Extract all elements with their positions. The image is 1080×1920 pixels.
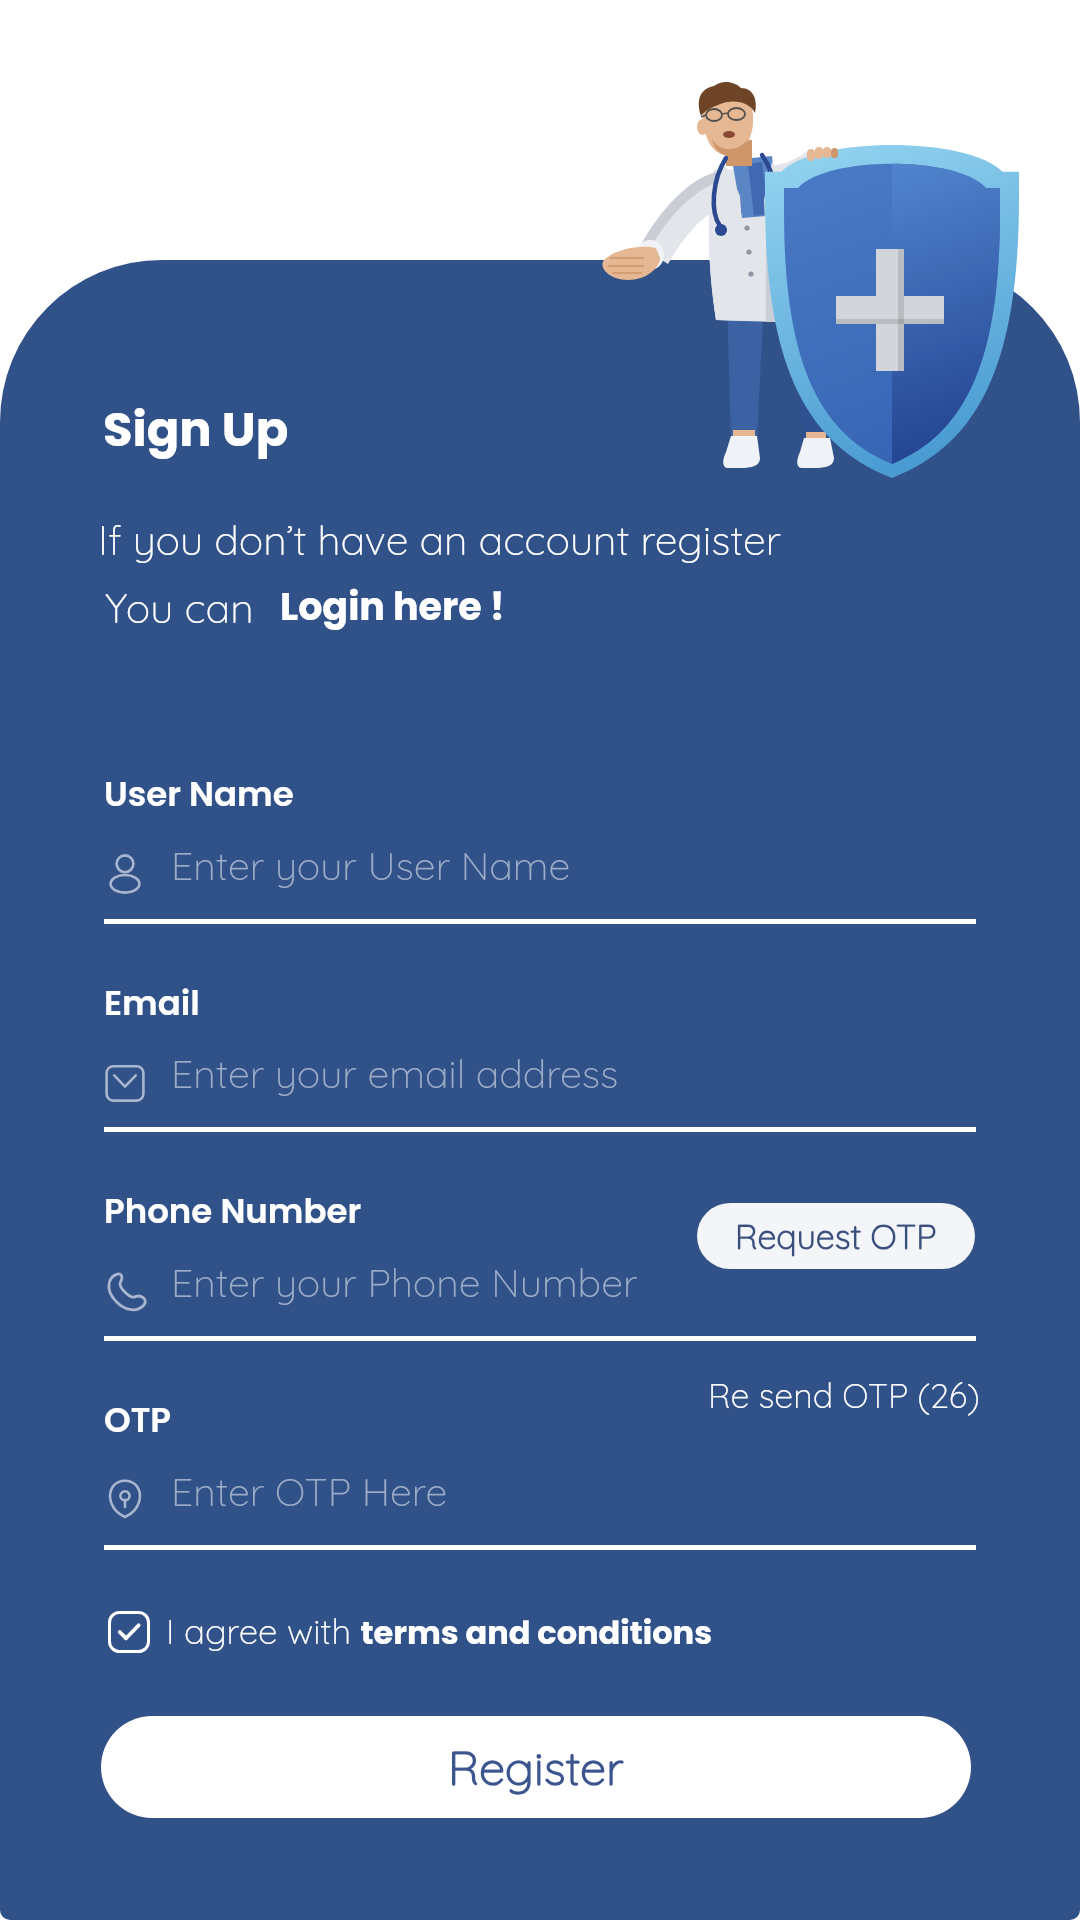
staticText: If you don’t have an account register xyxy=(98,514,781,565)
staticText: Re send OTP (26) xyxy=(708,1374,980,1417)
staticText: Sign Up xyxy=(103,396,289,463)
staticText: Enter your Phone Number xyxy=(171,1258,638,1307)
staticText: Login here ! xyxy=(280,580,505,633)
staticText: You can xyxy=(105,582,254,633)
staticText: OTP xyxy=(104,1396,171,1444)
staticText: Phone Number xyxy=(104,1187,362,1235)
other: User xyxy=(105,853,145,893)
staticText: Email xyxy=(104,979,200,1027)
staticText: Enter your User Name xyxy=(171,841,571,890)
button[interactable]: Request OTP xyxy=(697,1203,975,1269)
button[interactable]: I agree with terms and conditions xyxy=(108,1609,712,1655)
other: Phone xyxy=(105,1270,149,1314)
staticText: Register xyxy=(448,1738,624,1797)
other: OTP xyxy=(105,1479,145,1519)
staticText: User Name xyxy=(104,770,294,818)
button[interactable]: Re send OTP (26) xyxy=(708,1374,980,1417)
staticText: I agree with terms and conditions xyxy=(166,1609,712,1655)
button[interactable]: Register xyxy=(101,1716,971,1818)
button[interactable]: Login here ! xyxy=(280,580,505,633)
other: Email xyxy=(105,1061,145,1101)
staticText: Enter OTP Here xyxy=(171,1467,448,1516)
staticText: Enter your email address xyxy=(171,1049,619,1098)
staticText: Request OTP xyxy=(735,1215,937,1258)
